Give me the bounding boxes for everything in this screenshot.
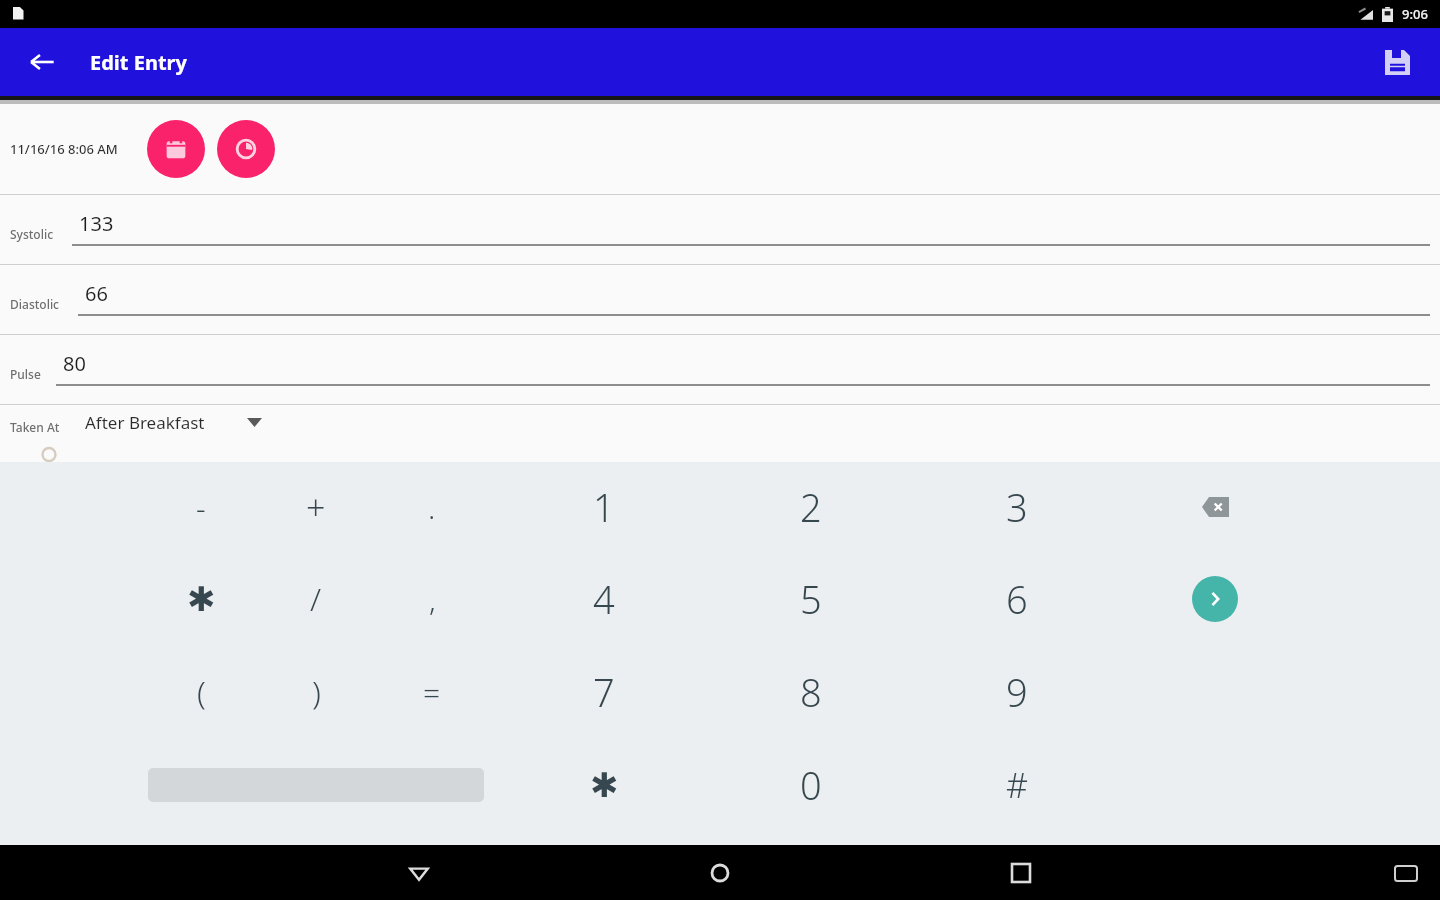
staticText: Systolic (10, 226, 54, 242)
staticText: 9 (1006, 666, 1028, 718)
button[interactable]: - (153, 469, 249, 545)
staticText: 7 (593, 666, 615, 718)
staticText: - (196, 487, 206, 528)
staticText: ( (197, 670, 206, 714)
staticText: 80 (63, 350, 86, 377)
staticText: , (429, 579, 436, 620)
staticText: 4 (593, 573, 615, 625)
button[interactable]: Back (18, 38, 66, 86)
staticText: ✱ (187, 579, 216, 619)
staticText: . (428, 487, 436, 528)
button[interactable]: 4 (556, 561, 652, 637)
staticText: Edit Entry (90, 49, 187, 76)
button[interactable]: 5 (763, 561, 859, 637)
staticText: 9:06 (1402, 5, 1428, 23)
button[interactable]: Pulse (0, 335, 1440, 404)
button[interactable]: Recents (998, 850, 1044, 896)
staticText: 66 (85, 280, 108, 307)
button[interactable]: Systolic (0, 195, 1440, 264)
staticText: Pulse (10, 366, 41, 382)
button[interactable]: Save (1374, 39, 1420, 85)
staticText: 8 (800, 666, 822, 718)
button[interactable]: . (384, 469, 480, 545)
staticText: 2 (800, 481, 822, 533)
button[interactable]: Backspace (1183, 475, 1247, 539)
staticText: ✱ (590, 765, 619, 805)
button[interactable]: 9 (969, 654, 1065, 730)
button[interactable]: / (268, 561, 364, 637)
button[interactable]: # (969, 747, 1065, 823)
button[interactable]: Taken At (0, 405, 1440, 462)
staticText: 11/16/16 8:06 AM (10, 140, 118, 158)
button[interactable]: ✱ (153, 561, 249, 637)
staticText: / (310, 577, 322, 621)
staticText: 1 (593, 481, 615, 533)
staticText: = (423, 672, 441, 713)
button[interactable]: Switch keyboard (1388, 855, 1424, 891)
button[interactable]: Pick date (147, 120, 205, 178)
staticText: After Breakfast (85, 411, 205, 434)
button[interactable]: 1 (556, 469, 652, 545)
staticText: 6 (1006, 573, 1028, 625)
staticText: 0 (800, 759, 822, 811)
button[interactable]: + (268, 469, 364, 545)
staticText: ) (312, 670, 321, 714)
staticText: # (1006, 762, 1028, 808)
staticText: Taken At (10, 419, 60, 435)
button[interactable]: Hide keyboard (396, 850, 442, 896)
button[interactable]: Home (697, 850, 743, 896)
button[interactable]: ✱ (556, 747, 652, 823)
staticText: 3 (1006, 481, 1028, 533)
button[interactable]: , (384, 561, 480, 637)
button[interactable]: ) (268, 654, 364, 730)
button[interactable]: 6 (969, 561, 1065, 637)
button[interactable]: 3 (969, 469, 1065, 545)
staticText: 133 (79, 210, 114, 237)
staticText: + (306, 484, 326, 530)
button[interactable]: ( (153, 654, 249, 730)
button[interactable]: 0 (763, 747, 859, 823)
button[interactable]: Pick time (217, 120, 275, 178)
staticText: Diastolic (10, 296, 60, 312)
button[interactable]: 2 (763, 469, 859, 545)
button[interactable]: Diastolic (0, 265, 1440, 334)
button[interactable]: = (384, 654, 480, 730)
button[interactable]: 8 (763, 654, 859, 730)
staticText: 5 (800, 573, 822, 625)
button[interactable]: Enter (1192, 576, 1238, 622)
button[interactable]: 7 (556, 654, 652, 730)
